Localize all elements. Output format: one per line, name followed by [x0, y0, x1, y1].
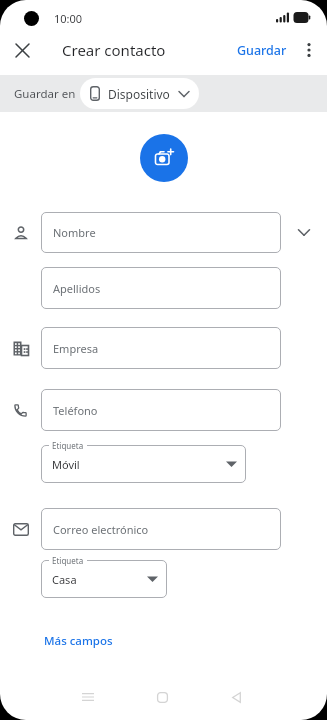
staticText: Dispositivo	[108, 86, 170, 102]
button[interactable]: Casa	[41, 560, 167, 598]
button[interactable]: Nombre	[41, 212, 281, 253]
button[interactable]	[140, 134, 188, 182]
staticText: Empresa	[53, 341, 99, 356]
staticText: Etiqueta	[52, 555, 84, 566]
button[interactable]	[291, 34, 327, 66]
staticText: Etiqueta	[52, 440, 84, 451]
button[interactable]: Correo electrónico	[41, 508, 281, 550]
staticText: Móvil	[52, 457, 80, 472]
button[interactable]: Más campos	[44, 633, 113, 649]
button[interactable]: Móvil	[41, 445, 246, 483]
staticText: Más campos	[44, 633, 113, 649]
button[interactable]	[12, 40, 32, 60]
button[interactable]	[216, 677, 256, 717]
staticText: Correo electrónico	[53, 522, 149, 537]
staticText: 10:00	[54, 11, 83, 26]
button[interactable]: Empresa	[41, 327, 281, 369]
staticText: Guardar en	[14, 86, 76, 102]
staticText: Crear contacto	[62, 40, 166, 60]
button[interactable]	[68, 677, 108, 717]
button[interactable]: Teléfono	[41, 389, 281, 431]
button[interactable]	[142, 677, 182, 717]
staticText: Apellidos	[53, 281, 101, 296]
staticText: Casa	[52, 572, 77, 587]
button[interactable]	[281, 212, 327, 253]
button[interactable]: Dispositivo	[80, 78, 199, 109]
staticText: Guardar	[237, 42, 287, 59]
button[interactable]: Apellidos	[41, 267, 281, 309]
button[interactable]: Guardar	[233, 38, 291, 63]
staticText: Nombre	[53, 225, 96, 240]
staticText: Teléfono	[53, 403, 98, 418]
